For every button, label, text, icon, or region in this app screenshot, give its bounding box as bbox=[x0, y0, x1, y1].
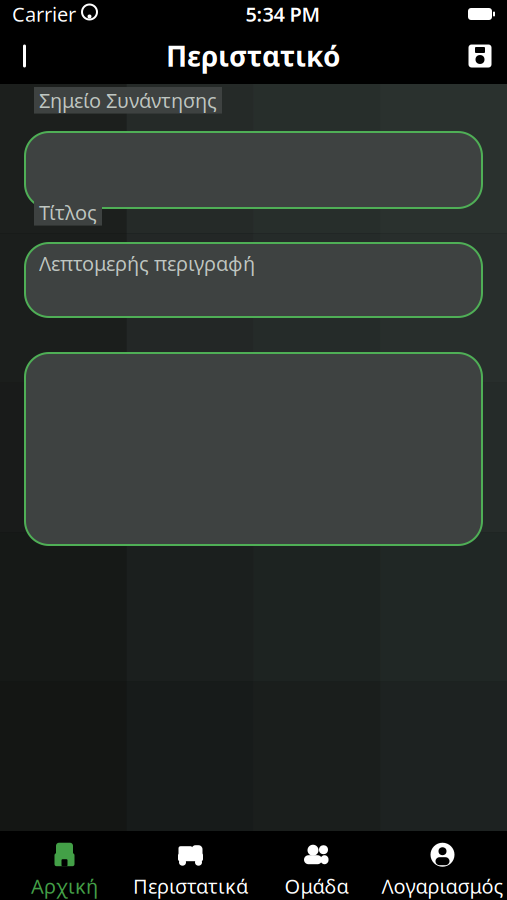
staticText: Carrier bbox=[12, 1, 76, 27]
staticText: Ομάδα bbox=[284, 873, 348, 899]
staticText: Τίτλος bbox=[39, 199, 97, 226]
staticText: 5:34 PM bbox=[245, 1, 320, 27]
staticText: Περιστατικά bbox=[133, 873, 248, 899]
button[interactable]: Back bbox=[0, 28, 54, 84]
button[interactable]: Λεπτομερής περιγραφή bbox=[25, 346, 482, 552]
button[interactable]: Λογαριασμός bbox=[379, 831, 505, 900]
button[interactable]: Αρχική bbox=[1, 831, 127, 900]
button[interactable]: Σημείο Συνάντησης bbox=[25, 125, 482, 215]
staticText: Λογαριασμός bbox=[381, 873, 503, 899]
button[interactable]: Περιστατικά bbox=[127, 831, 253, 900]
staticText: Περιστατικό bbox=[166, 37, 341, 75]
button[interactable]: Save bbox=[453, 28, 507, 84]
staticText: Λεπτομερής περιγραφή bbox=[39, 250, 255, 277]
staticText: Σημείο Συνάντησης bbox=[39, 87, 217, 114]
button[interactable]: Τίτλος bbox=[25, 236, 482, 324]
staticText: Αρχική bbox=[31, 873, 98, 899]
button[interactable]: Ομάδα bbox=[253, 831, 379, 900]
